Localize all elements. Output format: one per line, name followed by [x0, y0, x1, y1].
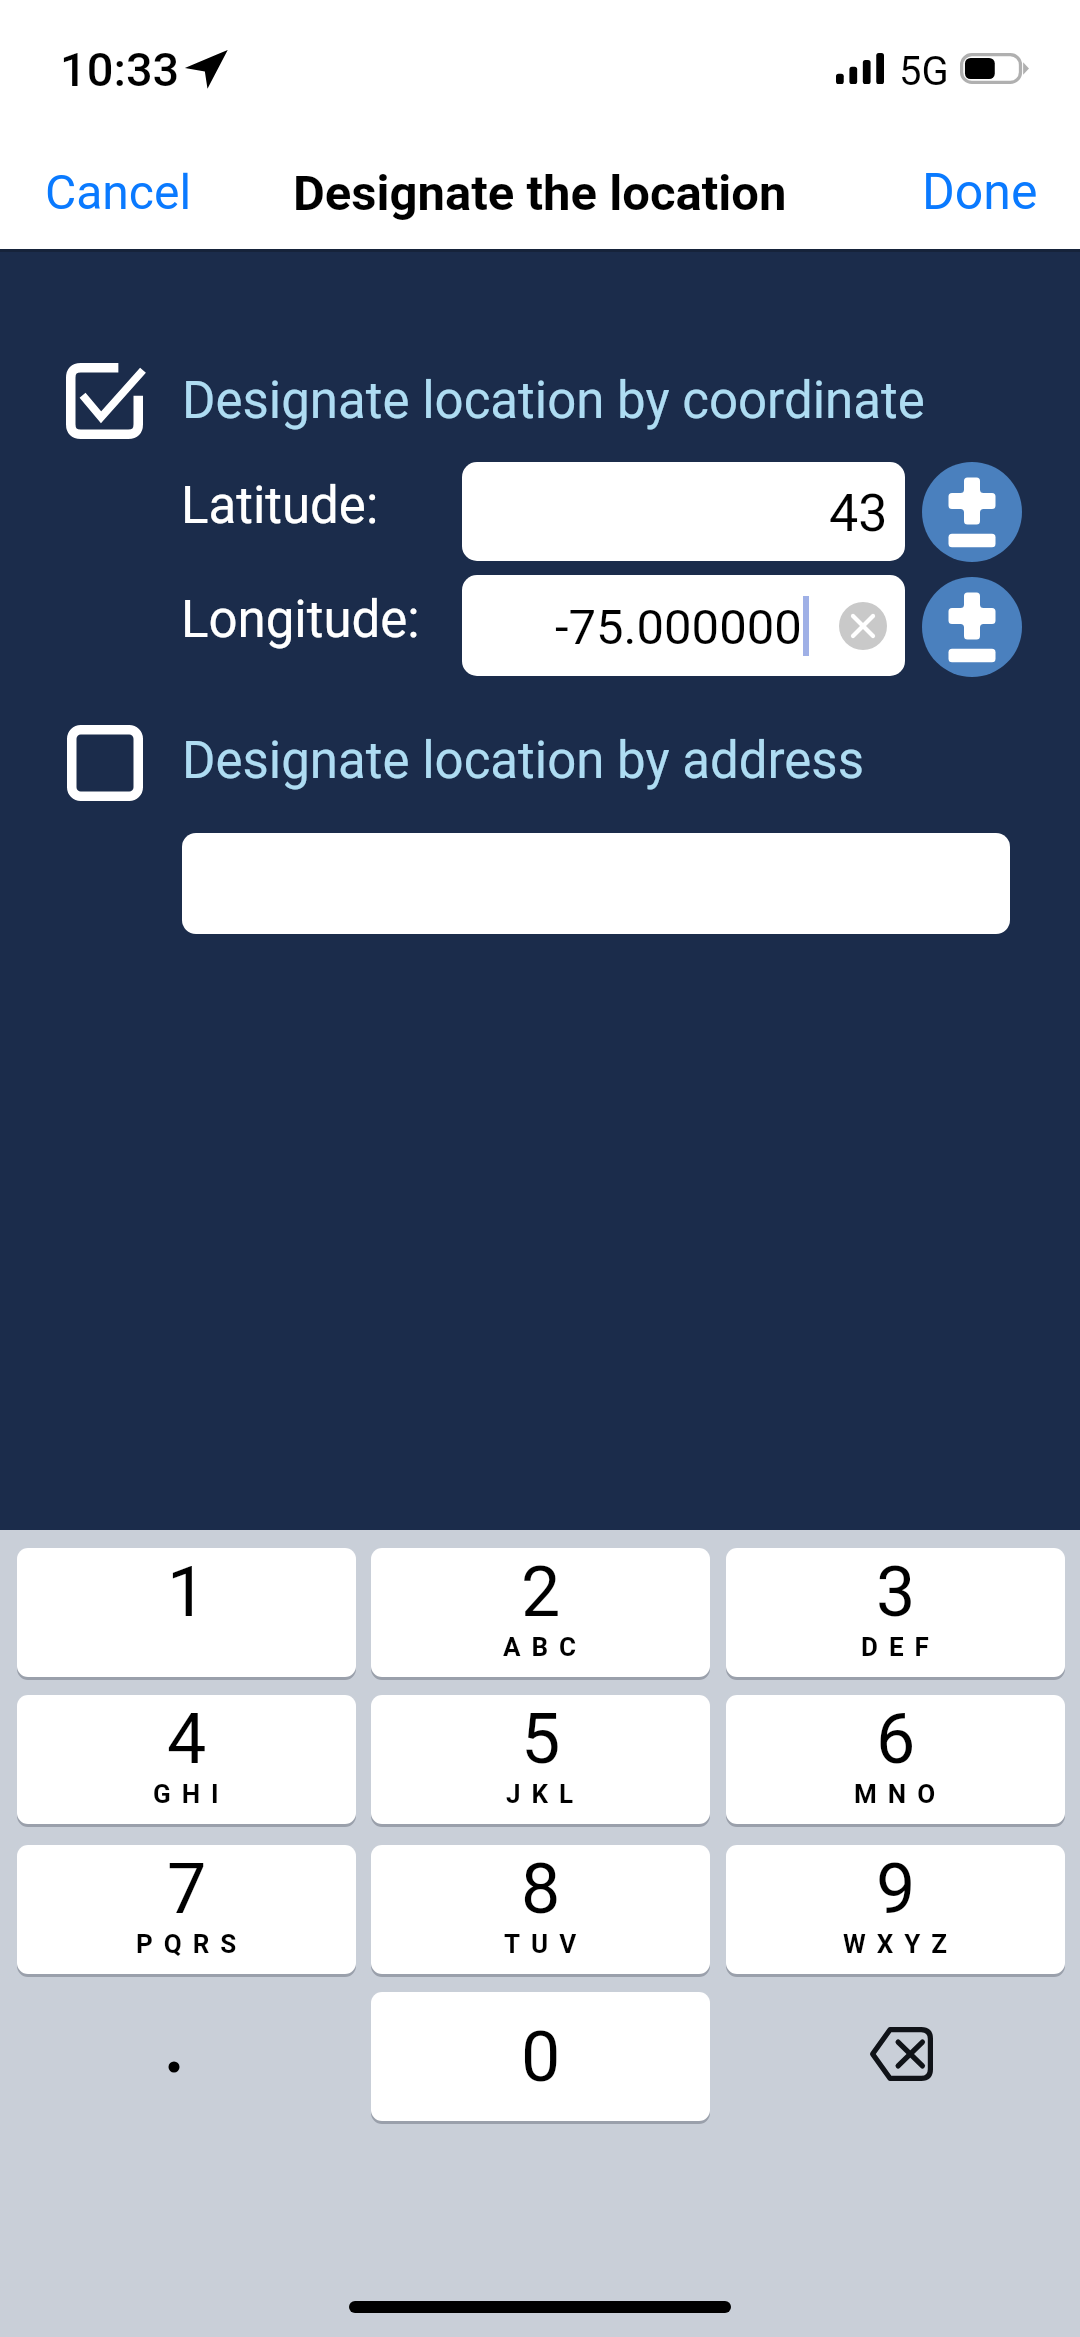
button[interactable]: 9	[726, 1845, 1065, 1974]
button[interactable]: 1	[17, 1548, 356, 1677]
staticText: 7	[167, 1848, 207, 1930]
staticText: TUV	[504, 1929, 588, 1959]
button[interactable]: 2	[371, 1548, 710, 1677]
staticText: Latitude:	[181, 476, 379, 536]
button[interactable]	[67, 725, 143, 801]
button[interactable]: 6	[726, 1695, 1065, 1824]
button[interactable]: 7	[17, 1845, 356, 1974]
staticText: 2	[521, 1551, 561, 1633]
staticText: -75.000000	[555, 599, 802, 656]
button[interactable]: Done	[882, 136, 1080, 247]
button[interactable]: -75.000000	[462, 575, 905, 676]
staticText: MNO	[854, 1779, 947, 1809]
staticText: 9	[876, 1848, 916, 1930]
staticText: Designate the location	[293, 165, 787, 222]
button[interactable]: Backspace	[726, 1992, 1065, 2121]
staticText: 6	[876, 1698, 916, 1780]
button[interactable]: 0	[371, 1992, 710, 2121]
button[interactable]: 8	[371, 1845, 710, 1974]
staticText: 43	[829, 483, 888, 544]
button[interactable]: 43	[462, 462, 905, 561]
button[interactable]: 3	[726, 1548, 1065, 1677]
staticText: 10:33	[60, 42, 180, 97]
staticText: Cancel	[45, 164, 192, 220]
button[interactable]: Cancel	[0, 137, 232, 245]
button[interactable]: Toggle sign	[922, 577, 1022, 677]
button[interactable]: Clear text	[839, 602, 887, 650]
button[interactable]: 4	[17, 1695, 356, 1824]
button[interactable]: Decimal point	[17, 1992, 356, 2121]
button[interactable]	[66, 363, 143, 439]
staticText: Designate location by coordinate	[182, 371, 925, 431]
staticText: Done	[922, 163, 1038, 222]
staticText: WXYZ	[843, 1929, 959, 1959]
staticText: Longitude:	[181, 590, 420, 650]
button[interactable]	[182, 833, 1010, 934]
button[interactable]: 5	[371, 1695, 710, 1824]
staticText: 3	[876, 1551, 916, 1633]
staticText: ABC	[503, 1632, 588, 1662]
staticText: DEF	[861, 1632, 940, 1662]
staticText: 5	[521, 1698, 561, 1780]
button[interactable]: Toggle sign	[922, 462, 1022, 562]
staticText: 4	[167, 1698, 207, 1780]
staticText: 0	[521, 2016, 561, 2098]
staticText: Designate location by address	[182, 731, 864, 791]
staticText: 5G	[899, 48, 949, 95]
staticText: 1	[167, 1551, 207, 1633]
staticText: JKL	[506, 1779, 585, 1809]
staticText: 8	[521, 1848, 561, 1930]
staticText: GHI	[153, 1779, 230, 1809]
staticText: PQRS	[136, 1929, 248, 1959]
